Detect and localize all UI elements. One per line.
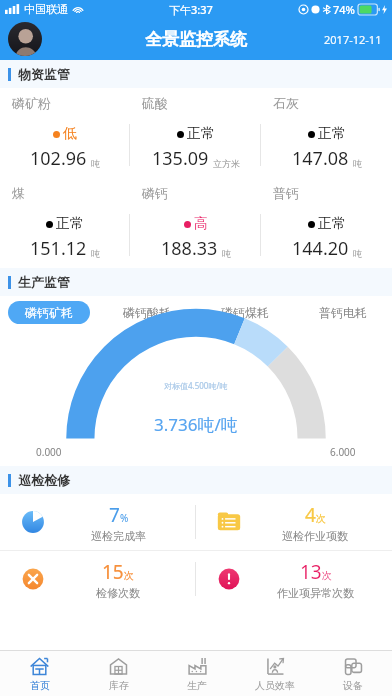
- staticText: 中国联通: [24, 2, 68, 16]
- staticText: 物资监管: [18, 66, 70, 82]
- button[interactable]: 普钙: [261, 178, 392, 268]
- staticText: 低: [63, 125, 77, 143]
- staticText: 巡检检修: [18, 472, 70, 488]
- button[interactable]: 普钙电耗: [294, 296, 392, 328]
- staticText: 6.000: [330, 445, 356, 459]
- button[interactable]: 4: [196, 494, 392, 550]
- staticText: 全景监控系统: [145, 29, 247, 50]
- staticText: 库存: [109, 679, 129, 692]
- staticText: 煤: [12, 185, 25, 201]
- staticText: 人员效率: [255, 679, 295, 692]
- staticText: 首页: [30, 679, 50, 692]
- staticText: 巡检完成率: [91, 529, 146, 543]
- staticText: 检修次数: [96, 586, 140, 600]
- button[interactable]: 磷钙煤耗: [196, 296, 294, 328]
- staticText: 135.09: [152, 146, 209, 171]
- button[interactable]: 磷钙酸耗: [98, 296, 196, 328]
- button[interactable]: 15: [0, 551, 195, 607]
- staticText: 102.96: [30, 146, 87, 171]
- staticText: 普钙: [273, 185, 299, 201]
- staticText: 吨: [353, 248, 362, 259]
- staticText: 正常: [318, 125, 346, 143]
- staticText: 高: [194, 215, 208, 233]
- button[interactable]: 磷矿粉: [0, 88, 130, 178]
- staticText: 磷钙酸耗: [123, 305, 171, 320]
- staticText: 0.000: [36, 445, 62, 459]
- staticText: 生产监管: [18, 274, 70, 290]
- staticText: 144.20: [292, 236, 349, 261]
- staticText: 13: [300, 559, 322, 585]
- staticText: %: [120, 511, 129, 525]
- staticText: 生产: [187, 679, 207, 692]
- staticText: 硫酸: [142, 95, 168, 111]
- button[interactable]: 设备: [314, 651, 392, 696]
- button[interactable]: 磷钙: [130, 178, 261, 268]
- staticText: 74%: [333, 2, 355, 17]
- button[interactable]: 首页: [0, 651, 79, 696]
- staticText: 正常: [187, 125, 215, 143]
- staticText: 15: [102, 559, 124, 585]
- staticText: 石灰: [273, 95, 299, 111]
- button[interactable]: 人员效率: [236, 651, 314, 696]
- staticText: 磷钙矿耗: [25, 305, 73, 320]
- staticText: 次: [322, 569, 332, 582]
- staticText: 吨: [91, 248, 100, 259]
- button[interactable]: 硫酸: [130, 88, 261, 178]
- staticText: 147.08: [292, 146, 349, 171]
- staticText: 磷钙: [142, 185, 168, 201]
- staticText: 188.33: [161, 236, 218, 261]
- staticText: 吨: [353, 158, 362, 169]
- staticText: 3.736吨/吨: [154, 413, 238, 436]
- staticText: 2017-12-11: [324, 32, 382, 47]
- button[interactable]: 7: [0, 494, 195, 550]
- staticText: 磷钙煤耗: [221, 305, 269, 320]
- staticText: 磷矿粉: [12, 95, 51, 111]
- staticText: 立方米: [213, 158, 240, 169]
- button[interactable]: 生产: [158, 651, 236, 696]
- staticText: 作业项异常次数: [277, 586, 354, 600]
- staticText: 151.12: [30, 236, 87, 261]
- button[interactable]: 石灰: [261, 88, 392, 178]
- staticText: 次: [316, 512, 326, 525]
- button[interactable]: 库存: [79, 651, 158, 696]
- staticText: 巡检作业项数: [282, 529, 348, 543]
- staticText: 正常: [318, 215, 346, 233]
- button[interactable]: 磷钙矿耗: [0, 296, 98, 328]
- staticText: 设备: [343, 679, 363, 692]
- staticText: 7: [109, 502, 120, 528]
- staticText: 对标值4.500吨/吨: [164, 380, 228, 391]
- button[interactable]: 13: [196, 551, 392, 607]
- staticText: 4: [305, 502, 316, 528]
- button[interactable]: 煤: [0, 178, 130, 268]
- staticText: 正常: [56, 215, 84, 233]
- staticText: 吨: [222, 248, 231, 259]
- staticText: 吨: [91, 158, 100, 169]
- staticText: 下午3:37: [169, 2, 213, 17]
- staticText: 普钙电耗: [319, 305, 367, 320]
- button[interactable]: Profile: [8, 22, 42, 56]
- staticText: 次: [124, 569, 134, 582]
